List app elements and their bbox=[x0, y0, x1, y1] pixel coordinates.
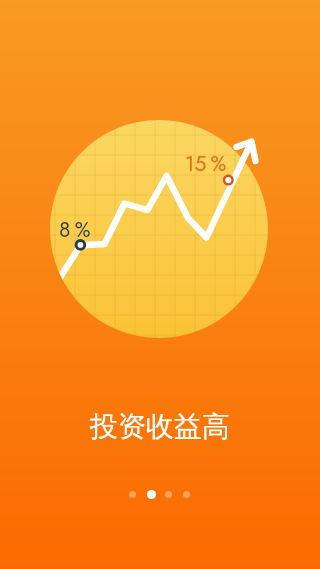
staticText: 8 % bbox=[59, 215, 91, 245]
staticText: 投资收益高 bbox=[90, 409, 230, 444]
button[interactable] bbox=[165, 491, 172, 498]
staticText: 15 % bbox=[185, 149, 227, 179]
button[interactable] bbox=[147, 490, 156, 499]
button[interactable] bbox=[183, 491, 190, 498]
button[interactable] bbox=[129, 491, 136, 498]
